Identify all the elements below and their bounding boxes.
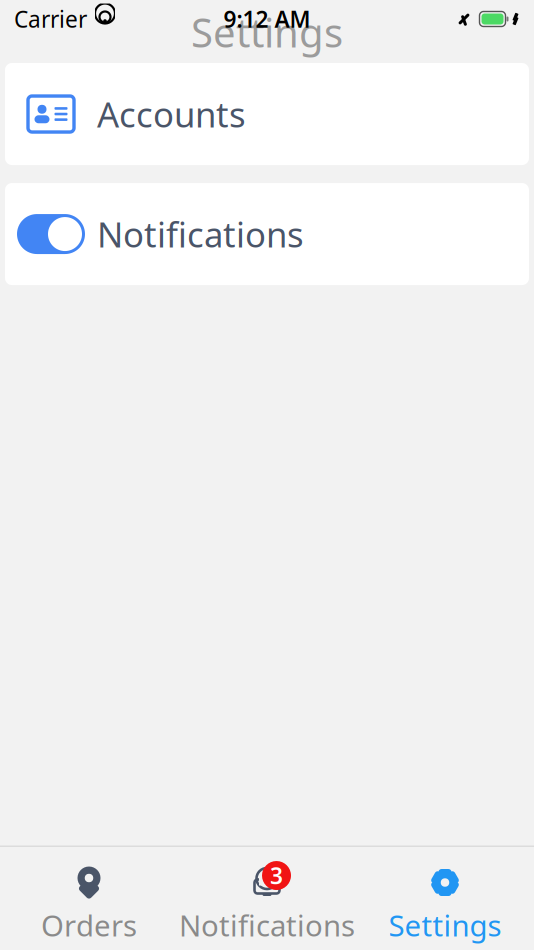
staticText: 3 bbox=[270, 860, 283, 891]
button[interactable]: Notifications bbox=[5, 183, 529, 285]
staticText: Orders bbox=[41, 905, 137, 944]
button[interactable]: 3 bbox=[178, 852, 356, 944]
staticText: Accounts bbox=[97, 91, 246, 137]
button[interactable]: Settings bbox=[356, 852, 534, 944]
staticText: Notifications bbox=[97, 211, 304, 257]
staticText: Settings bbox=[191, 5, 343, 58]
staticText: Carrier bbox=[14, 4, 87, 34]
staticText: Settings bbox=[388, 905, 501, 944]
staticText: 9:12 AM bbox=[223, 4, 310, 34]
button[interactable]: Orders bbox=[0, 852, 178, 944]
staticText: Notifications bbox=[179, 905, 355, 944]
button[interactable]: Accounts bbox=[5, 63, 529, 165]
